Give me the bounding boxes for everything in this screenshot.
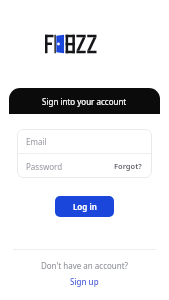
staticText: Don't have an account? bbox=[9, 260, 160, 271]
staticText: Log in bbox=[73, 201, 97, 212]
staticText: Forgot? bbox=[114, 161, 142, 171]
button[interactable]: Log in bbox=[55, 196, 114, 217]
button[interactable]: Password bbox=[17, 154, 152, 178]
staticText: Email bbox=[26, 136, 47, 147]
button[interactable]: Forgot? bbox=[113, 159, 143, 173]
staticText: Sign into your account bbox=[42, 96, 127, 107]
button[interactable]: Email bbox=[17, 129, 152, 153]
staticText: Password bbox=[26, 161, 113, 172]
other: Fobzz logo bbox=[45, 33, 125, 55]
staticText: Sign up bbox=[70, 276, 99, 287]
button[interactable]: Sign up bbox=[66, 275, 103, 288]
